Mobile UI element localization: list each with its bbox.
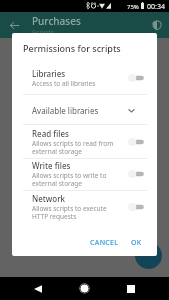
staticText: Allows scripts to write to external stor…: [32, 171, 107, 188]
button[interactable]: OK: [127, 233, 146, 253]
staticText: Access to all libraries: [32, 79, 96, 88]
staticText: Available libraries: [32, 105, 99, 116]
staticText: Permissions for scripts: [23, 42, 121, 54]
staticText: 00:34: [147, 2, 165, 12]
staticText: Read files: [32, 128, 69, 139]
button[interactable]: Available libraries: [12, 95, 157, 125]
button[interactable]: CANCEL: [86, 233, 123, 253]
staticText: Network: [32, 193, 66, 204]
staticText: OK: [131, 238, 142, 248]
button[interactable]: Libraries: [12, 61, 157, 95]
staticText: Allows scripts to read from external sto…: [32, 139, 114, 156]
button[interactable]: Back: [29, 280, 46, 297]
button[interactable]: Navigate up: [6, 17, 22, 33]
button[interactable]: Recent apps: [122, 280, 139, 297]
button[interactable]: Write files: [12, 158, 157, 190]
staticText: Write files: [32, 160, 71, 171]
button[interactable]: Network: [12, 190, 157, 224]
staticText: Scripts: [32, 28, 55, 38]
staticText: Libraries: [32, 68, 66, 79]
staticText: 75%: [127, 3, 139, 11]
button[interactable]: Add: [135, 242, 162, 269]
button[interactable]: Security: [149, 17, 165, 33]
staticText: Purchases: [32, 14, 81, 28]
staticText: CANCEL: [90, 238, 119, 248]
button[interactable]: Home: [76, 280, 93, 297]
staticText: Allows scripts to execute HTTP requests: [32, 204, 107, 221]
button[interactable]: Read files: [12, 125, 157, 158]
